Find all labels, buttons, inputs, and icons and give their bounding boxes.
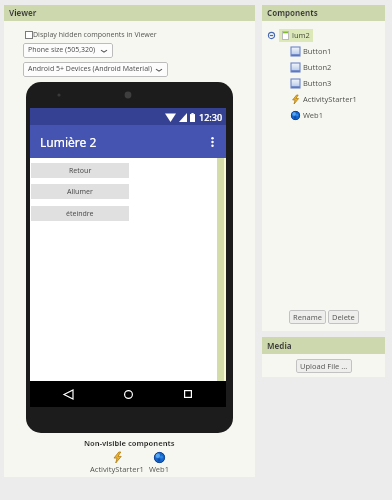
button[interactable]: Button3 (262, 75, 385, 91)
staticText: Web1 (149, 464, 169, 474)
button[interactable]: Home (118, 384, 138, 404)
staticText: Non-visible components (84, 438, 175, 448)
button[interactable]: Retour (31, 163, 129, 178)
staticText: 12:30 (199, 111, 223, 123)
staticText: éteindre (66, 209, 94, 219)
button[interactable]: Upload File ... (296, 359, 352, 373)
staticText: Display hidden components in Viewer (33, 30, 157, 40)
staticText: Web1 (303, 110, 323, 120)
button[interactable]: Rename (289, 310, 326, 324)
button[interactable]: lum2 (262, 27, 313, 43)
staticText: Viewer (9, 7, 37, 18)
button[interactable]: Android 5+ Devices (Android Material) (23, 62, 168, 77)
staticText: lum2 (292, 30, 310, 40)
staticText: Upload File ... (300, 361, 348, 371)
staticText: ActivityStarter1 (90, 464, 144, 474)
button[interactable]: More options (205, 135, 219, 149)
button[interactable]: Display hidden components in Viewer (25, 30, 157, 40)
staticText: Android 5+ Devices (Android Material) (28, 64, 153, 74)
staticText: Rename (293, 312, 322, 322)
staticText: Components (267, 7, 318, 18)
staticText: Retour (69, 166, 92, 176)
staticText: Button2 (303, 62, 332, 72)
button[interactable]: Web1 (262, 107, 385, 123)
staticText: Lumière 2 (40, 134, 97, 150)
button[interactable]: ActivityStarter1 (262, 91, 385, 107)
staticText: Button1 (303, 46, 332, 56)
button[interactable]: ActivityStarter1 (90, 452, 144, 474)
button[interactable]: Button1 (262, 43, 385, 59)
button[interactable]: Recents (178, 384, 198, 404)
button[interactable]: Web1 (149, 452, 169, 474)
staticText: ActivityStarter1 (303, 94, 357, 104)
staticText: Media (267, 340, 292, 351)
button[interactable]: Delete (328, 310, 359, 324)
button[interactable]: Phone size (505,320) (23, 43, 113, 58)
button[interactable]: Button2 (262, 59, 385, 75)
staticText: Allumer (67, 187, 93, 197)
button[interactable]: éteindre (31, 206, 129, 221)
staticText: Delete (332, 312, 355, 322)
button[interactable]: Allumer (31, 184, 129, 199)
staticText: Phone size (505,320) (28, 45, 96, 55)
staticText: Button3 (303, 78, 332, 88)
button[interactable]: Back (58, 384, 78, 404)
